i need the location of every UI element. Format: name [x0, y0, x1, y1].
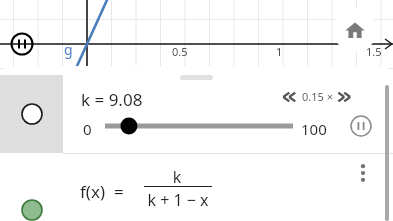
button[interactable]: Pause animation: [11, 33, 33, 55]
button[interactable]: Home, reset view: [333, 8, 377, 52]
staticText: 1.5: [366, 44, 382, 59]
button[interactable]: Animation speed 0.15: [282, 89, 353, 104]
staticText: 0.5: [172, 44, 188, 59]
staticText: g: [64, 40, 73, 59]
button[interactable]: f(x) =: [63, 154, 393, 221]
button[interactable]: Pause slider animation: [350, 115, 372, 137]
staticText: k = 9.08: [81, 88, 143, 111]
staticText: k + 1 − x: [144, 189, 212, 211]
staticText: 0: [83, 119, 92, 139]
staticText: k: [167, 166, 187, 188]
button[interactable]: More options: [352, 162, 374, 184]
staticText: 0.15 ×: [302, 89, 333, 104]
button[interactable]: Slider k value: [103, 115, 295, 137]
staticText: f(x) =: [80, 180, 124, 203]
button[interactable]: Toggle visibility of k: [0, 75, 63, 153]
staticText: 1: [276, 44, 283, 59]
button[interactable]: Toggle visibility of f: [0, 154, 63, 221]
staticText: 100: [301, 119, 327, 139]
